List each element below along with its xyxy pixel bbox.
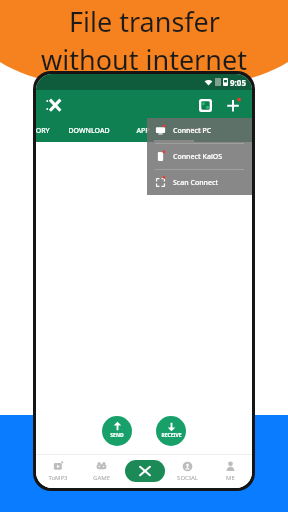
staticText: Connect KaiOS <box>173 152 223 162</box>
staticText: GAME <box>93 474 110 482</box>
staticText: DOWNLOAD <box>68 126 110 136</box>
staticText: MUSIC <box>186 126 209 136</box>
button[interactable]: Add connection <box>222 94 244 116</box>
button[interactable]: HISTORY <box>36 120 62 142</box>
button[interactable]: RECEIVE <box>156 416 186 446</box>
staticText: APP <box>136 126 150 136</box>
staticText: RECEIVE <box>161 432 182 439</box>
staticText: SEND <box>110 432 124 439</box>
staticText: File transfer <box>69 3 220 40</box>
button[interactable]: App logo <box>44 94 66 116</box>
button[interactable]: ToMP3 <box>36 454 80 488</box>
staticText: SOCIAL <box>177 474 198 482</box>
button[interactable]: APP <box>116 120 170 142</box>
staticText: ToMP3 <box>48 474 68 482</box>
button[interactable]: ME <box>209 454 252 488</box>
button[interactable]: SOCIAL <box>166 454 209 488</box>
staticText: without internet <box>41 41 247 78</box>
button[interactable]: GAME <box>80 454 123 488</box>
button[interactable]: MUSIC <box>170 120 224 142</box>
button[interactable]: Connect PC <box>147 118 252 143</box>
staticText: Scan Connect <box>173 178 219 188</box>
button[interactable]: Scan Connect <box>147 170 252 195</box>
staticText: ME <box>226 474 235 482</box>
staticText: 9:05 <box>230 77 246 88</box>
button[interactable]: Transfer <box>125 460 165 482</box>
staticText: HISTORY <box>36 126 50 136</box>
button[interactable]: Connect KaiOS <box>147 144 252 169</box>
staticText: Connect PC <box>173 126 212 136</box>
button[interactable]: SEND <box>102 416 132 446</box>
button[interactable]: Scan QR code <box>194 94 216 116</box>
button[interactable]: DOWNLOAD <box>62 120 116 142</box>
